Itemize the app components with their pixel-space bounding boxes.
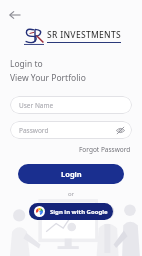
button[interactable]: Password [10,121,132,139]
button[interactable]: Back [3,3,27,27]
staticText: or [0,190,142,198]
button[interactable]: Sign in with Google [29,203,113,220]
button[interactable]: Login [18,164,124,184]
staticText: Password [19,126,49,135]
staticText: View Your Portfolio [10,72,86,84]
staticText: Sign in with Google [50,208,108,216]
button[interactable]: User Name [10,96,132,114]
staticText: SR INVESTMENTS [47,29,122,41]
staticText: Login [61,169,82,179]
staticText: Login to [10,58,43,70]
button[interactable]: Forgot Password [77,143,133,156]
button[interactable]: Show password [114,124,126,136]
staticText: User Name [19,101,54,110]
staticText: Forgot Password [79,145,131,154]
